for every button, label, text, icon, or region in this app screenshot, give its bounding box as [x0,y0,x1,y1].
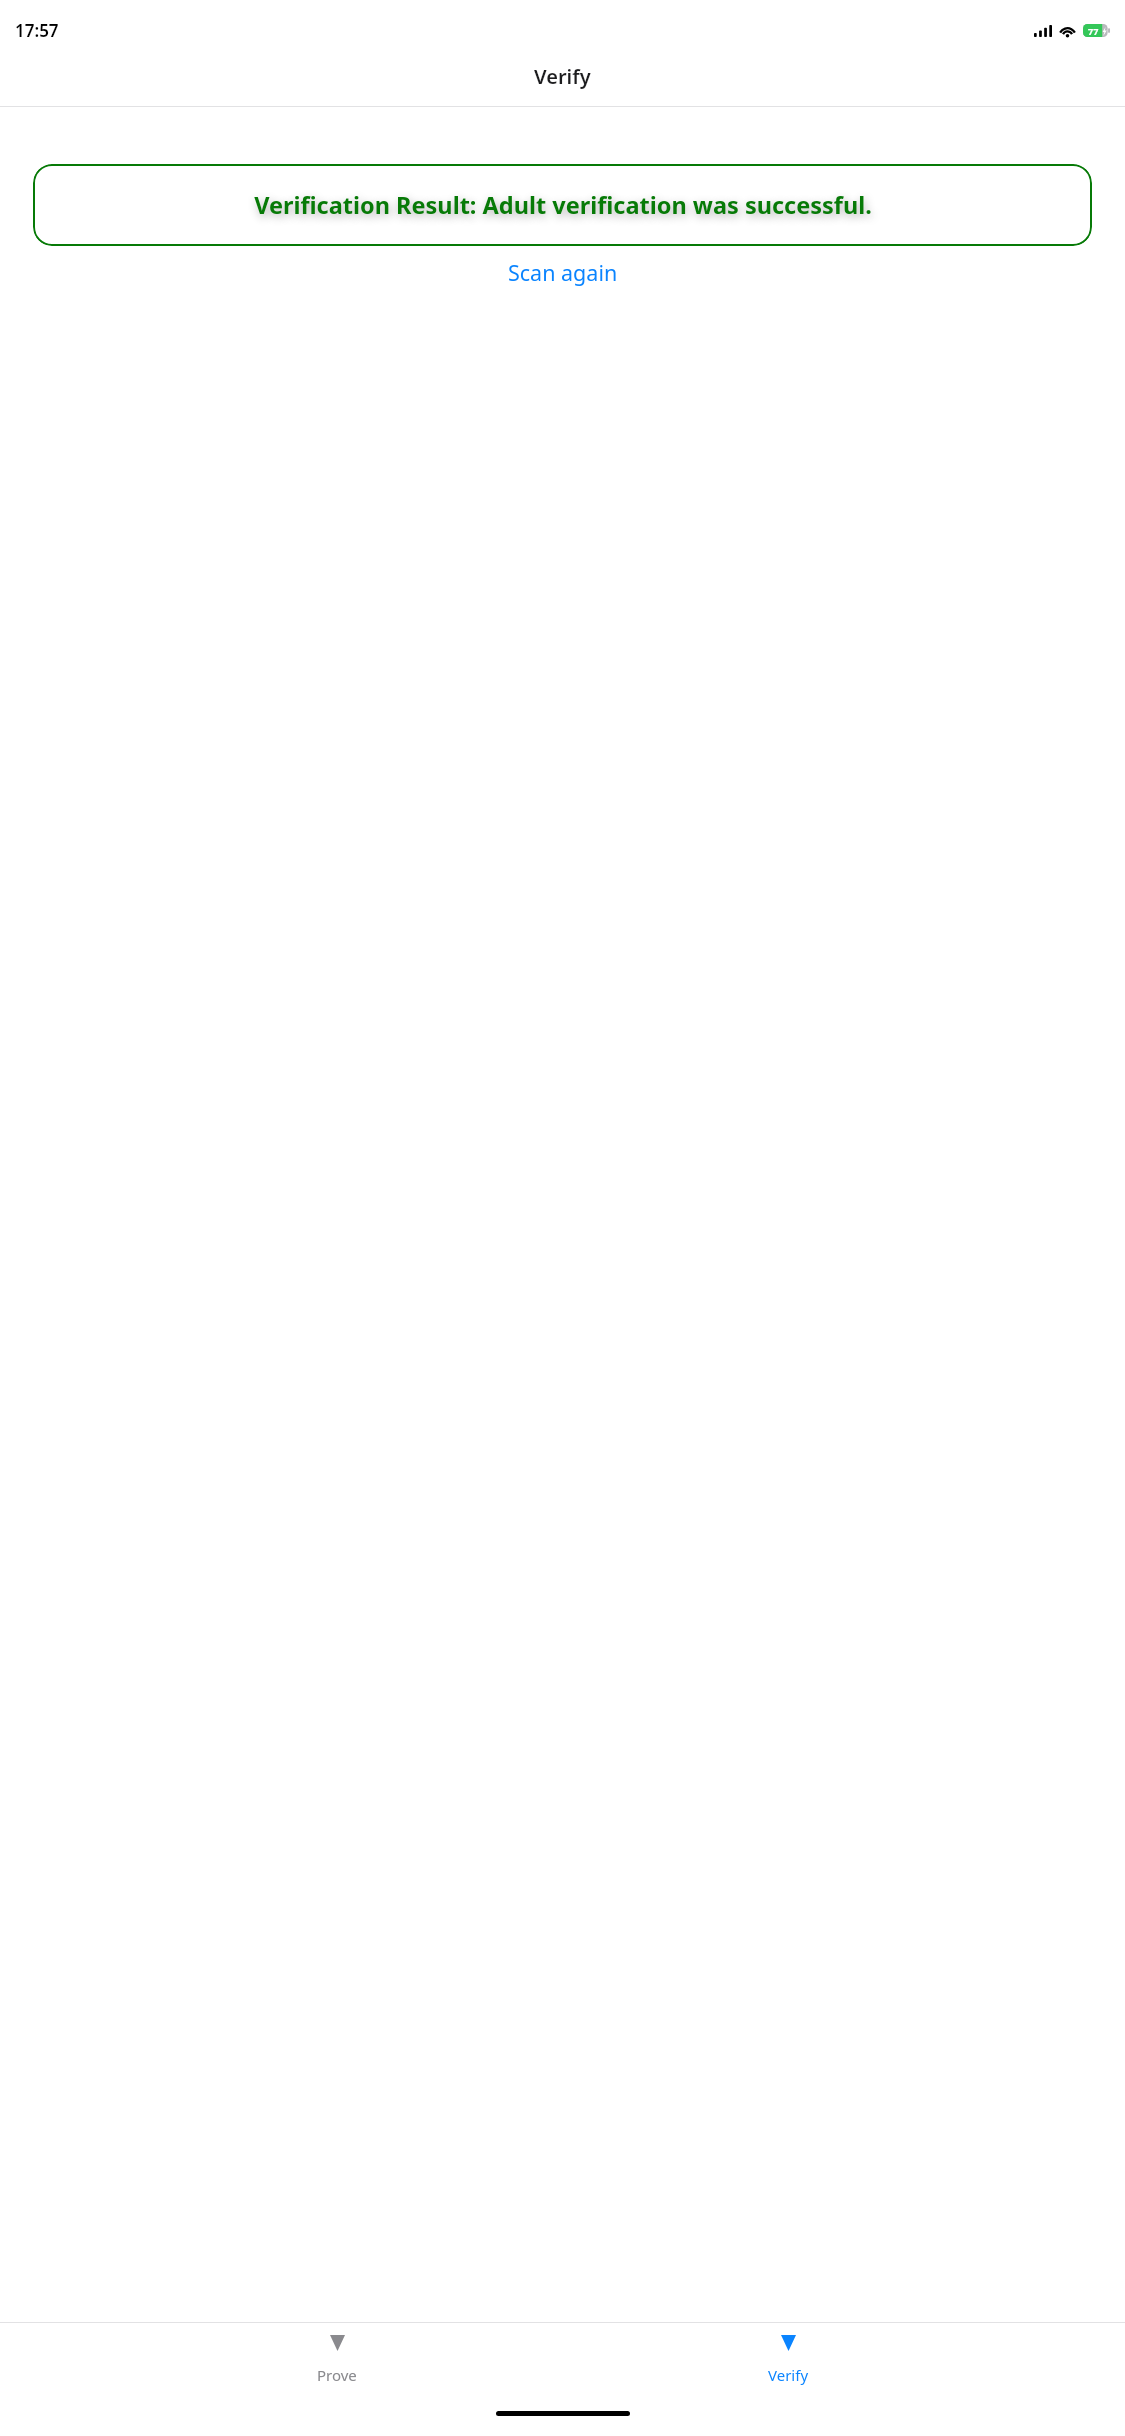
staticText: 77 [1088,25,1099,37]
staticText: Verify [768,2365,809,2385]
staticText: 17:57 [15,19,59,42]
other: Prove [330,2335,345,2351]
button[interactable]: Prove [222,2323,452,2402]
staticText: Verify [534,63,591,90]
button[interactable]: Scan again [484,250,642,295]
staticText: Verification Result: Adult verification … [254,189,872,221]
button[interactable]: Verify [673,2323,903,2402]
button[interactable]: Verification Result: Adult verification … [33,164,1092,246]
staticText: Prove [317,2365,357,2385]
staticText: Scan again [508,258,618,287]
other: Verify [781,2335,796,2351]
